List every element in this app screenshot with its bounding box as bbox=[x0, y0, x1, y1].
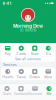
staticText: 9:41 bbox=[2, 1, 11, 6]
staticText: Scan bbox=[31, 52, 39, 56]
button[interactable]: Pay bbox=[1, 45, 14, 55]
staticText: More bbox=[44, 75, 52, 79]
button[interactable]: Travel bbox=[14, 69, 28, 78]
button[interactable]: Discover bbox=[28, 86, 42, 95]
staticText: ID 884219 bbox=[20, 28, 36, 32]
button[interactable]: More bbox=[41, 69, 55, 78]
button[interactable]: Me bbox=[42, 86, 56, 95]
staticText: Discover bbox=[28, 92, 42, 96]
button[interactable]: Cards bbox=[14, 45, 28, 55]
button[interactable]: See all services bbox=[1, 56, 55, 62]
staticText: Health bbox=[2, 75, 13, 79]
staticText: Services bbox=[3, 63, 17, 67]
button[interactable]: Scan bbox=[28, 45, 41, 55]
staticText: Contacts bbox=[14, 92, 28, 96]
button[interactable]: Orders bbox=[28, 69, 41, 78]
button[interactable]: Contacts bbox=[14, 86, 28, 95]
button[interactable]: Health bbox=[1, 69, 14, 78]
staticText: Chats bbox=[2, 92, 11, 96]
staticText: Me bbox=[46, 92, 51, 96]
staticText: Go bbox=[46, 52, 51, 56]
staticText: Cards bbox=[16, 52, 26, 56]
staticText: Orders bbox=[29, 75, 40, 79]
staticText: Morning Dew bbox=[13, 23, 43, 29]
staticText: Pay bbox=[5, 52, 11, 56]
button[interactable]: Chats bbox=[0, 86, 14, 95]
button[interactable]: Go bbox=[41, 45, 55, 55]
staticText: Travel bbox=[16, 75, 26, 79]
staticText: See all services bbox=[15, 57, 41, 61]
